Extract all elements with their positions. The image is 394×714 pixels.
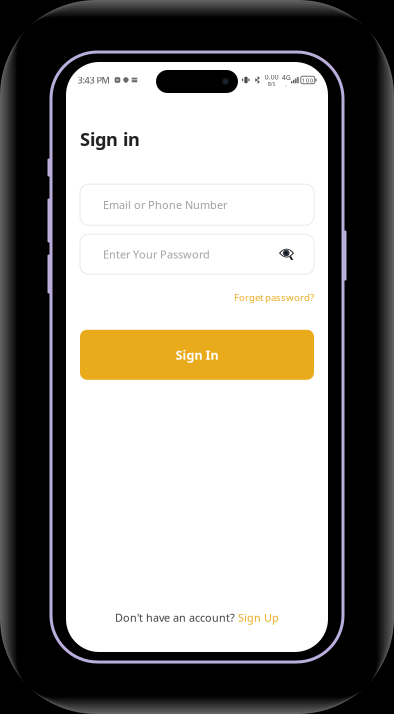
staticText: .. <box>285 81 287 87</box>
button[interactable]: Sign Up <box>238 610 279 625</box>
staticText: 100 <box>302 76 314 84</box>
button[interactable]: Sign In <box>80 330 314 380</box>
staticText: Sign Up <box>238 610 279 625</box>
button[interactable]: Forget password? <box>234 291 314 304</box>
staticText: 3:43 PM <box>77 74 109 86</box>
staticText: Sign In <box>175 346 218 363</box>
staticText: 4G <box>282 72 291 82</box>
staticText: Forget password? <box>234 291 314 304</box>
staticText: Don't have an account? <box>115 610 235 625</box>
staticText: Enter Your Password <box>103 247 210 262</box>
staticText: 0.00 <box>265 72 279 82</box>
staticText: Email or Phone Number <box>103 197 227 212</box>
button[interactable]: Enter Your Password <box>80 234 314 274</box>
staticText: B/S <box>268 81 276 87</box>
staticText: Sign in <box>80 126 140 151</box>
button[interactable]: Email or Phone Number <box>80 184 314 225</box>
